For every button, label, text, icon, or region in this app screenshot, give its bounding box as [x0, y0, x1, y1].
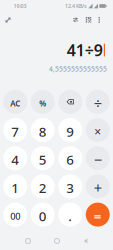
button[interactable]: %: [31, 90, 55, 114]
staticText: 3: [66, 179, 74, 197]
button[interactable]: =: [86, 203, 110, 227]
button[interactable]: AC: [3, 90, 27, 114]
button[interactable]: Calculator mode: [81, 13, 95, 27]
staticText: −: [94, 150, 102, 169]
staticText: 2: [39, 179, 47, 197]
staticText: 19:03: [13, 2, 26, 10]
button[interactable]: 5: [31, 146, 55, 170]
staticText: 9: [66, 123, 74, 140]
staticText: 4,5555555555555: [49, 65, 107, 73]
button[interactable]: ÷: [86, 90, 110, 114]
button[interactable]: Recents: [21, 234, 35, 248]
staticText: 7: [11, 123, 19, 140]
button[interactable]: 7: [3, 118, 27, 142]
staticText: 5: [39, 151, 47, 168]
button[interactable]: 3: [58, 174, 82, 198]
staticText: 41÷9: [67, 39, 103, 61]
button[interactable]: −: [86, 146, 110, 170]
button[interactable]: Back: [78, 234, 92, 248]
button[interactable]: Unit converter: [68, 13, 82, 27]
staticText: AC: [10, 98, 20, 109]
button[interactable]: +: [86, 174, 110, 198]
button[interactable]: .: [58, 203, 82, 227]
staticText: =: [94, 207, 102, 225]
button[interactable]: 00: [3, 203, 27, 227]
staticText: 00: [10, 210, 20, 222]
button[interactable]: Home: [50, 234, 64, 248]
button[interactable]: ×: [86, 118, 110, 142]
button[interactable]: 9: [58, 118, 82, 142]
staticText: 8: [39, 123, 47, 140]
button[interactable]: 6: [58, 146, 82, 170]
button[interactable]: More options: [93, 13, 105, 27]
staticText: ÷: [94, 94, 102, 113]
staticText: 12.4 KB/s: [65, 2, 87, 10]
button[interactable]: 8: [31, 118, 55, 142]
button[interactable]: 2: [31, 174, 55, 198]
staticText: 1: [11, 179, 19, 197]
staticText: 4: [11, 151, 19, 168]
button[interactable]: 0: [31, 203, 55, 227]
staticText: 6: [66, 151, 74, 168]
staticText: %: [39, 98, 46, 109]
button[interactable]: 1: [3, 174, 27, 198]
staticText: +: [94, 178, 102, 198]
staticText: .: [68, 207, 72, 225]
button[interactable]: 4: [3, 146, 27, 170]
button[interactable]: Full screen: [1, 13, 15, 27]
button[interactable]: Backspace: [58, 90, 82, 114]
staticText: ×: [94, 123, 101, 139]
staticText: 0: [39, 207, 47, 225]
